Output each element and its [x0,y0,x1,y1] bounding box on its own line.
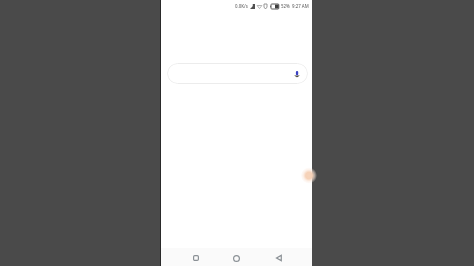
button[interactable]: Search [167,63,308,84]
button[interactable]: Voice search [292,69,302,79]
button[interactable]: Recent apps [185,249,206,266]
staticText: 0.0K/s [235,3,248,9]
staticText: 9:27 AM [292,3,309,9]
button[interactable]: Back [268,249,289,266]
staticText: 52% [281,3,290,9]
button[interactable]: Home [226,249,247,266]
